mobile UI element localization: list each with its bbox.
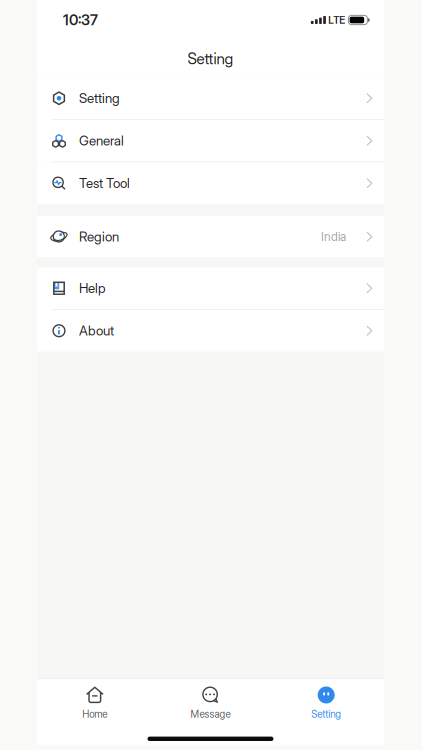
staticText: India (321, 229, 346, 244)
staticText: Help (79, 280, 106, 296)
button[interactable]: Region (37, 216, 384, 257)
button[interactable]: About (37, 310, 384, 351)
staticText: Setting (187, 49, 233, 68)
staticText: About (79, 323, 114, 339)
staticText: Region (79, 229, 119, 245)
button[interactable]: Setting (268, 679, 384, 724)
staticText: General (79, 133, 124, 149)
button[interactable]: Help (37, 267, 384, 309)
button[interactable]: General (37, 120, 384, 161)
button[interactable]: Setting (37, 77, 384, 119)
button[interactable]: Message (153, 679, 268, 724)
button[interactable]: Test Tool (37, 162, 384, 204)
staticText: Test Tool (79, 175, 130, 191)
button[interactable]: Home (37, 679, 153, 724)
staticText: LTE (328, 14, 345, 26)
staticText: Setting (79, 90, 120, 106)
staticText: Message (190, 708, 230, 720)
staticText: Home (82, 708, 107, 720)
staticText: Setting (311, 708, 341, 720)
staticText: 10:37 (63, 11, 98, 29)
